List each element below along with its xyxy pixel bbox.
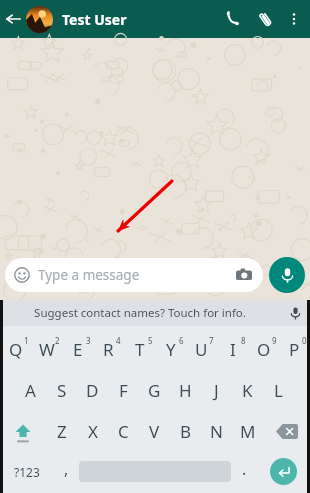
button[interactable]: A: [15, 370, 46, 411]
staticText: 6: [179, 335, 184, 346]
button[interactable]: C: [108, 411, 139, 452]
button[interactable]: V: [139, 411, 170, 452]
staticText: V: [149, 420, 160, 443]
staticText: L: [274, 379, 283, 402]
button[interactable]: ,: [53, 452, 79, 491]
button[interactable]: T: [124, 329, 155, 370]
button[interactable]: H: [170, 370, 201, 411]
staticText: P: [289, 338, 300, 361]
button[interactable]: W: [31, 329, 62, 370]
button[interactable]: Call: [215, 0, 249, 38]
button[interactable]: Q: [0, 329, 31, 370]
button[interactable]: Y: [155, 329, 186, 370]
staticText: H: [179, 379, 192, 402]
button[interactable]: I: [217, 329, 248, 370]
staticText: ,: [64, 458, 69, 480]
button[interactable]: L: [263, 370, 294, 411]
button[interactable]: Enter: [257, 452, 310, 491]
staticText: U: [195, 338, 208, 361]
button[interactable]: Contact photo: [26, 6, 53, 33]
button[interactable]: Type a message: [5, 258, 263, 292]
button[interactable]: Back: [0, 0, 26, 38]
staticText: 4: [116, 335, 121, 346]
staticText: 2: [55, 335, 60, 346]
staticText: 5: [148, 335, 153, 346]
staticText: 9: [272, 335, 277, 346]
staticText: R: [103, 338, 114, 361]
staticText: B: [180, 420, 192, 443]
staticText: ?123: [14, 464, 40, 480]
button[interactable]: G: [139, 370, 170, 411]
staticText: Z: [57, 420, 67, 443]
button[interactable]: O: [248, 329, 279, 370]
button[interactable]: Shift: [0, 411, 46, 452]
button[interactable]: E: [62, 329, 93, 370]
button[interactable]: K: [232, 370, 263, 411]
button[interactable]: ?123: [0, 452, 53, 491]
button[interactable]: Backspace: [263, 411, 310, 452]
button[interactable]: Z: [46, 411, 77, 452]
staticText: S: [57, 379, 67, 402]
staticText: 1: [24, 335, 29, 346]
staticText: .: [242, 458, 247, 480]
staticText: I: [230, 338, 236, 361]
staticText: Test User: [62, 10, 127, 29]
staticText: 3: [86, 335, 91, 346]
staticText: A: [25, 379, 36, 402]
button[interactable]: X: [77, 411, 108, 452]
staticText: T: [135, 338, 145, 361]
staticText: 0: [302, 335, 307, 346]
staticText: K: [242, 379, 253, 402]
button[interactable]: .: [231, 452, 257, 491]
staticText: O: [257, 338, 271, 361]
button[interactable]: P: [279, 329, 310, 370]
staticText: C: [118, 420, 129, 443]
button[interactable]: D: [77, 370, 108, 411]
button[interactable]: B: [170, 411, 201, 452]
button[interactable]: F: [108, 370, 139, 411]
staticText: F: [119, 379, 128, 402]
button[interactable]: R: [93, 329, 124, 370]
staticText: J: [214, 379, 219, 402]
staticText: W: [39, 338, 55, 361]
staticText: N: [210, 420, 223, 443]
staticText: G: [148, 379, 161, 402]
staticText: D: [86, 379, 99, 402]
staticText: Type a message: [38, 266, 140, 284]
staticText: Suggest contact names? Touch for info.: [34, 305, 246, 321]
button[interactable]: Voice input: [280, 300, 310, 326]
staticText: 7: [209, 335, 214, 346]
button[interactable]: U: [186, 329, 217, 370]
button[interactable]: Voice message: [269, 257, 305, 293]
button[interactable]: N: [201, 411, 232, 452]
staticText: 8: [241, 335, 246, 346]
staticText: M: [240, 420, 256, 443]
button[interactable]: J: [201, 370, 232, 411]
staticText: Y: [166, 338, 176, 361]
button[interactable]: S: [46, 370, 77, 411]
staticText: X: [88, 420, 98, 443]
button[interactable]: Suggest contact names? Touch for info.: [0, 300, 310, 326]
button[interactable]: Camera: [234, 265, 254, 285]
staticText: E: [73, 338, 83, 361]
staticText: Q: [9, 338, 23, 361]
button[interactable]: Attach: [249, 0, 281, 38]
button[interactable]: More options: [281, 0, 307, 38]
button[interactable]: M: [232, 411, 263, 452]
